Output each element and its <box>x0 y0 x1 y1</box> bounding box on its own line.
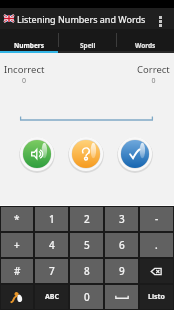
staticText: . <box>155 238 158 252</box>
button[interactable] <box>1 285 33 309</box>
button[interactable]: Listo <box>140 285 173 309</box>
staticText: # <box>14 264 21 278</box>
staticText: Words <box>135 41 156 50</box>
staticText: Correct <box>137 63 170 76</box>
button[interactable] <box>140 259 173 283</box>
button[interactable] <box>105 285 138 309</box>
staticText: Incorrect <box>4 63 45 76</box>
staticText: 1 <box>49 212 55 226</box>
button[interactable]: 8 <box>70 259 103 283</box>
staticText: Spell <box>80 41 96 50</box>
button[interactable]: - <box>140 207 173 231</box>
button[interactable]: 0 <box>70 285 103 309</box>
button[interactable]: Play sound <box>19 136 55 172</box>
button[interactable]: . <box>140 233 173 257</box>
button[interactable]: More options <box>152 8 168 29</box>
button[interactable]: Spell <box>59 29 116 51</box>
staticText: 9 <box>119 264 125 278</box>
button[interactable]: # <box>1 259 33 283</box>
staticText: 3 <box>119 212 125 226</box>
staticText: 0 <box>137 76 170 86</box>
staticText: 6 <box>119 238 125 252</box>
button[interactable]: 7 <box>35 259 68 283</box>
button[interactable]: 6 <box>105 233 138 257</box>
staticText: + <box>14 238 20 252</box>
staticText: 0 <box>4 76 44 86</box>
staticText: 7 <box>49 264 55 278</box>
button[interactable]: ABC <box>35 285 68 309</box>
staticText: 4 <box>49 238 55 252</box>
button[interactable]: Words <box>117 29 174 51</box>
staticText: * <box>14 212 20 226</box>
button[interactable]: Hint <box>68 136 104 172</box>
button[interactable]: 1 <box>35 207 68 231</box>
staticText: Listo <box>148 292 165 302</box>
button[interactable]: Check <box>117 136 153 172</box>
button[interactable]: * <box>1 207 33 231</box>
button[interactable]: 2 <box>70 207 103 231</box>
staticText: 5 <box>84 238 90 252</box>
button[interactable]: + <box>1 233 33 257</box>
staticText: 8 <box>84 264 90 278</box>
button[interactable]: 4 <box>35 233 68 257</box>
staticText: Listening Numbers and Words <box>17 13 146 25</box>
staticText: 2 <box>84 212 90 226</box>
button[interactable]: Numbers <box>0 29 58 51</box>
button[interactable]: 5 <box>70 233 103 257</box>
button[interactable]: 9 <box>105 259 138 283</box>
staticText: Numbers <box>14 41 45 50</box>
staticText: - <box>155 212 159 226</box>
staticText: 0 <box>84 290 90 304</box>
button[interactable]: 3 <box>105 207 138 231</box>
staticText: ABC <box>45 292 59 302</box>
